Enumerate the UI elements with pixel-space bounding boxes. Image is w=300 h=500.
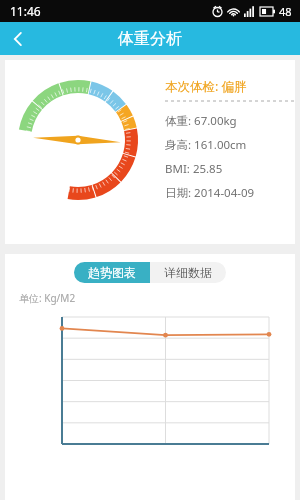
staticText: 身高: 161.00cm [165,137,247,153]
staticText: 趋势图表 [88,265,136,280]
button[interactable]: Back [0,22,36,55]
staticText: 48 [279,4,292,19]
button[interactable]: 趋势图表 [74,262,150,283]
staticText: 体重: 67.00kg [165,113,237,129]
button[interactable]: 详细数据 [150,262,226,283]
staticText: 单位: Kg/M2 [19,291,76,305]
staticText: 详细数据 [164,265,212,280]
staticText: 体重分析 [118,29,182,49]
staticText: 日期: 2014-04-09 [165,185,255,201]
staticText: BMI: 25.85 [165,161,223,177]
staticText: 本次体检: 偏胖 [165,78,247,95]
staticText: 11:46 [10,3,41,19]
